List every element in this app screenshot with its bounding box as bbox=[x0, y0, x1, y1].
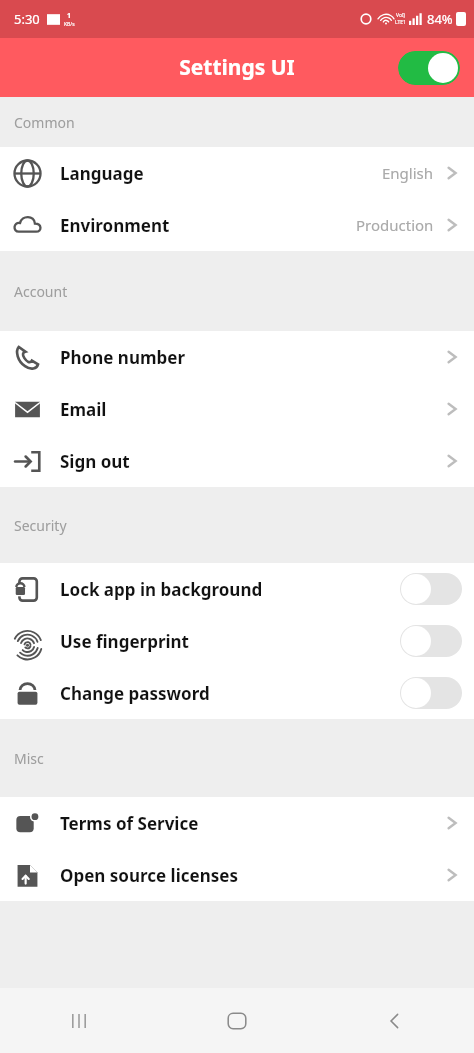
staticText: Security bbox=[14, 516, 67, 535]
button[interactable]: Open source licenses bbox=[0, 849, 474, 901]
staticText: 84% bbox=[427, 10, 453, 28]
staticText: Account bbox=[14, 282, 68, 301]
button[interactable]: Environment bbox=[0, 199, 474, 251]
staticText: English bbox=[382, 163, 434, 183]
button[interactable]: Recent apps bbox=[0, 988, 158, 1053]
button[interactable]: Terms of Service bbox=[0, 797, 474, 849]
button[interactable]: Sign out bbox=[0, 435, 474, 487]
button[interactable]: Lock app in background bbox=[0, 563, 474, 615]
button[interactable]: Use fingerprint bbox=[0, 615, 474, 667]
staticText: KB/s bbox=[64, 21, 75, 28]
button[interactable] bbox=[400, 677, 462, 709]
staticText: 5:30 bbox=[14, 10, 40, 28]
staticText: Common bbox=[14, 113, 75, 132]
staticText: Settings UI bbox=[0, 53, 474, 82]
staticText: Language bbox=[60, 162, 382, 185]
staticText: Misc bbox=[14, 749, 44, 768]
button[interactable]: Back bbox=[316, 988, 474, 1053]
staticText: 1 bbox=[67, 11, 72, 21]
staticText: Change password bbox=[60, 682, 400, 705]
button[interactable]: Phone number bbox=[0, 331, 474, 383]
staticText: Lock app in background bbox=[60, 578, 400, 601]
button[interactable]: Email bbox=[0, 383, 474, 435]
staticText: Environment bbox=[60, 214, 356, 237]
button[interactable] bbox=[400, 573, 462, 605]
staticText: Open source licenses bbox=[60, 864, 442, 887]
staticText: Terms of Service bbox=[60, 812, 442, 835]
button[interactable]: Home bbox=[158, 988, 316, 1053]
button[interactable]: Toggle settings bbox=[398, 51, 460, 85]
button[interactable]: Language bbox=[0, 147, 474, 199]
staticText: Use fingerprint bbox=[60, 630, 400, 653]
staticText: LTE1 bbox=[395, 19, 406, 26]
button[interactable] bbox=[400, 625, 462, 657]
staticText: Phone number bbox=[60, 346, 442, 369]
staticText: Email bbox=[60, 398, 442, 421]
staticText: VoI) bbox=[396, 12, 406, 19]
staticText: Production bbox=[356, 215, 434, 235]
staticText: Sign out bbox=[60, 450, 442, 473]
button[interactable]: Change password bbox=[0, 667, 474, 719]
